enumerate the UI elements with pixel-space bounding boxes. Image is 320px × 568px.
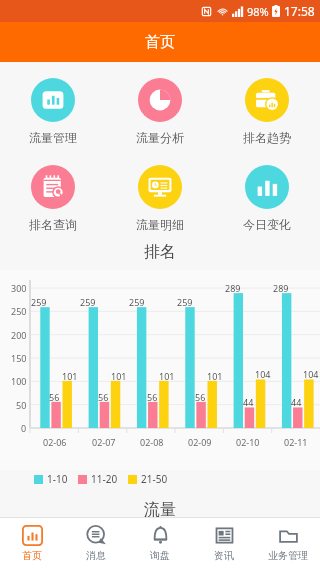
staticText: 流量明细 bbox=[136, 217, 184, 232]
staticText: 259 bbox=[129, 296, 145, 308]
staticText: 排名查询 bbox=[29, 217, 77, 232]
staticText: 排名趋势 bbox=[243, 130, 291, 145]
staticText: 询盘 bbox=[150, 549, 170, 562]
staticText: 101 bbox=[111, 370, 127, 382]
staticText: 02-10 bbox=[236, 436, 260, 448]
button[interactable]: 消息 bbox=[64, 518, 128, 568]
button[interactable]: 今日变化 bbox=[213, 161, 320, 236]
staticText: 44 bbox=[291, 396, 302, 408]
staticText: 今日变化 bbox=[243, 217, 291, 232]
staticText: 02-07 bbox=[92, 436, 116, 448]
button[interactable]: 排名查询 bbox=[0, 161, 106, 236]
button[interactable]: 询盘 bbox=[128, 518, 192, 568]
staticText: 104 bbox=[255, 368, 271, 380]
staticText: 1-10 bbox=[47, 472, 68, 486]
staticText: 50 bbox=[16, 399, 27, 411]
staticText: 02-06 bbox=[43, 436, 67, 448]
staticText: 100 bbox=[11, 375, 27, 387]
staticText: 56 bbox=[147, 391, 158, 403]
staticText: 02-08 bbox=[140, 436, 164, 448]
button[interactable]: 业务管理 bbox=[256, 518, 320, 568]
staticText: 21-50 bbox=[141, 472, 168, 486]
staticText: 首页 bbox=[145, 33, 175, 52]
staticText: 0 bbox=[21, 422, 27, 434]
staticText: 98% bbox=[247, 4, 269, 19]
staticText: 流量 bbox=[144, 500, 176, 517]
staticText: 56 bbox=[195, 391, 206, 403]
staticText: 289 bbox=[225, 282, 241, 294]
staticText: 排名 bbox=[144, 242, 176, 262]
staticText: 56 bbox=[49, 391, 60, 403]
button[interactable]: 流量明细 bbox=[106, 161, 213, 236]
staticText: 业务管理 bbox=[268, 549, 308, 562]
staticText: 259 bbox=[80, 296, 96, 308]
button[interactable]: 流量分析 bbox=[106, 74, 213, 149]
staticText: 02-11 bbox=[284, 436, 308, 448]
staticText: 流量管理 bbox=[29, 130, 77, 145]
staticText: 259 bbox=[31, 296, 47, 308]
staticText: 流量分析 bbox=[136, 130, 184, 145]
staticText: 17:58 bbox=[284, 3, 315, 19]
staticText: 首页 bbox=[22, 549, 42, 562]
staticText: 56 bbox=[98, 391, 109, 403]
staticText: 44 bbox=[243, 396, 254, 408]
staticText: 200 bbox=[11, 329, 27, 341]
staticText: 资讯 bbox=[214, 549, 234, 562]
button[interactable]: 资讯 bbox=[192, 518, 256, 568]
staticText: 02-09 bbox=[188, 436, 212, 448]
staticText: 104 bbox=[303, 368, 319, 380]
staticText: 101 bbox=[62, 370, 78, 382]
button[interactable]: 首页 bbox=[0, 518, 64, 568]
staticText: 11-20 bbox=[91, 472, 118, 486]
button[interactable]: 排名趋势 bbox=[213, 74, 320, 149]
staticText: 250 bbox=[11, 305, 27, 317]
staticText: 101 bbox=[207, 370, 223, 382]
staticText: 289 bbox=[273, 282, 289, 294]
staticText: 101 bbox=[159, 370, 175, 382]
staticText: 150 bbox=[11, 352, 27, 364]
staticText: 259 bbox=[177, 296, 193, 308]
staticText: 300 bbox=[11, 282, 27, 294]
button[interactable]: 流量管理 bbox=[0, 74, 106, 149]
staticText: 消息 bbox=[86, 549, 106, 562]
